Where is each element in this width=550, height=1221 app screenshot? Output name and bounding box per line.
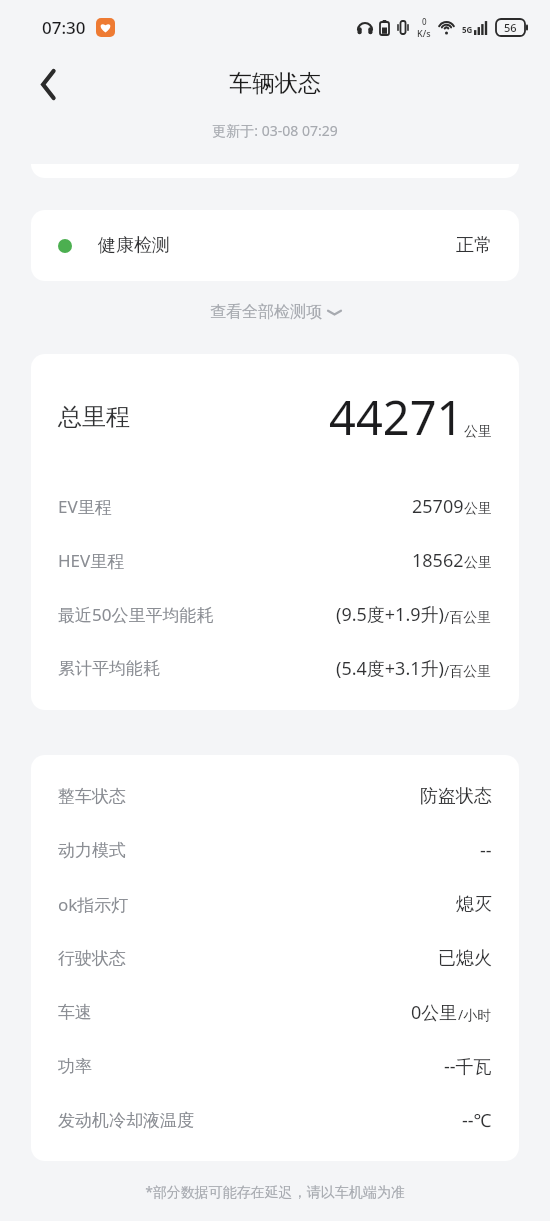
staticText: 查看全部检测项 bbox=[210, 302, 322, 322]
staticText: EV里程 bbox=[58, 495, 112, 518]
staticText: 25709 bbox=[412, 494, 464, 519]
button[interactable]: Back bbox=[26, 62, 70, 106]
staticText: 正常 bbox=[456, 234, 492, 257]
staticText: 0公里 bbox=[411, 1000, 458, 1025]
staticText: --℃ bbox=[462, 1108, 492, 1133]
staticText: --千瓦 bbox=[444, 1054, 492, 1079]
staticText: K/s bbox=[417, 27, 431, 39]
staticText: 公里 bbox=[464, 554, 492, 572]
staticText: 最近50公里平均能耗 bbox=[58, 603, 214, 626]
staticText: (9.5度+1.9升) bbox=[336, 602, 444, 627]
staticText: 累计平均能耗 bbox=[58, 658, 160, 679]
staticText: 动力模式 bbox=[58, 840, 126, 861]
staticText: /小时 bbox=[458, 1005, 492, 1024]
staticText: ok指示灯 bbox=[58, 893, 129, 916]
staticText: 防盗状态 bbox=[420, 785, 492, 808]
staticText: /百公里 bbox=[444, 607, 492, 626]
staticText: 56 bbox=[504, 20, 517, 35]
staticText: 总里程 bbox=[58, 402, 130, 432]
staticText: 公里 bbox=[464, 500, 492, 518]
staticText: 已熄火 bbox=[438, 947, 492, 970]
staticText: 18562 bbox=[412, 548, 464, 573]
staticText: 07:30 bbox=[42, 16, 86, 39]
staticText: 更新于: 03-08 07:29 bbox=[0, 121, 550, 140]
staticText: 整车状态 bbox=[58, 786, 126, 807]
staticText: 公里 bbox=[464, 423, 492, 441]
staticText: 车辆状态 bbox=[229, 69, 321, 98]
staticText: 发动机冷却液温度 bbox=[58, 1110, 194, 1131]
staticText: 健康检测 bbox=[98, 234, 170, 257]
staticText: *部分数据可能存在延迟，请以车机端为准 bbox=[0, 1182, 550, 1201]
button[interactable]: 查看全部检测项 bbox=[0, 299, 550, 325]
staticText: HEV里程 bbox=[58, 549, 125, 572]
staticText: 行驶状态 bbox=[58, 948, 126, 969]
staticText: 车速 bbox=[58, 1002, 92, 1023]
staticText: /百公里 bbox=[444, 661, 492, 680]
staticText: -- bbox=[480, 838, 492, 863]
staticText: 熄灭 bbox=[456, 893, 492, 916]
staticText: 44271 bbox=[329, 385, 464, 449]
button[interactable]: 健康检测 bbox=[31, 210, 519, 281]
staticText: 功率 bbox=[58, 1056, 92, 1077]
staticText: 5G bbox=[462, 24, 473, 35]
staticText: 0 bbox=[422, 16, 427, 27]
staticText: (5.4度+3.1升) bbox=[336, 656, 444, 681]
